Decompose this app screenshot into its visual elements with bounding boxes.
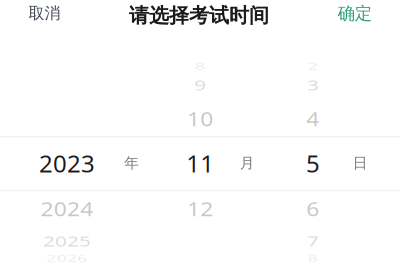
staticText: 2025	[39, 225, 95, 257]
staticText: 5	[306, 147, 320, 179]
staticText: 取消	[28, 3, 60, 23]
button[interactable]: 确定	[323, 0, 387, 28]
staticText: 8	[306, 243, 320, 272]
staticText: 2023	[39, 147, 95, 179]
staticText: 月	[240, 154, 255, 172]
staticText: 7	[306, 225, 320, 257]
staticText: 10	[186, 103, 214, 135]
staticText: 6	[306, 193, 320, 225]
staticText: 请选择考试时间	[129, 3, 269, 28]
button[interactable]: 2023	[0, 34, 156, 272]
button[interactable]: 取消	[12, 0, 76, 28]
staticText: 4	[306, 103, 320, 135]
staticText: 日	[353, 154, 368, 172]
staticText: 9	[193, 69, 207, 101]
staticText: 3	[306, 69, 320, 101]
staticText: 11	[186, 147, 214, 179]
staticText: 8	[193, 51, 207, 83]
button[interactable]: 2	[270, 34, 400, 272]
staticText: 12	[186, 193, 214, 225]
staticText: 2024	[39, 193, 95, 225]
button[interactable]: 8	[156, 34, 270, 272]
staticText: 年	[124, 154, 139, 172]
staticText: 2026	[39, 243, 95, 272]
staticText: 确定	[338, 3, 372, 24]
staticText: 2	[306, 51, 320, 83]
